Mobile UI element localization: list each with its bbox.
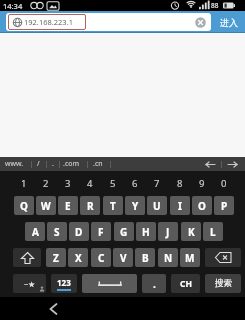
button[interactable]: 2 (36, 171, 56, 196)
button[interactable] (82, 274, 137, 293)
button[interactable]: CH (171, 274, 200, 293)
staticText: 8 (177, 177, 183, 190)
button[interactable]: . (142, 274, 166, 293)
button[interactable]: D (69, 222, 89, 241)
button[interactable]: 3 (58, 171, 78, 196)
staticText: K (188, 225, 195, 239)
staticText: D (75, 225, 83, 239)
staticText: 5 (110, 177, 116, 190)
button[interactable]: H (136, 222, 156, 241)
button[interactable]: M (180, 248, 200, 267)
button[interactable]: U (147, 196, 167, 215)
button[interactable]: ~★ (13, 274, 46, 293)
button[interactable]: L (203, 222, 223, 241)
button[interactable] (205, 248, 241, 267)
staticText: M (185, 251, 195, 265)
button[interactable]: O (192, 196, 212, 215)
button[interactable]: T (103, 196, 123, 215)
staticText: .com (63, 159, 80, 169)
button[interactable]: A (25, 222, 45, 241)
staticText: V (120, 251, 127, 265)
button[interactable]: www. (5, 157, 24, 171)
staticText: ~★ (24, 279, 36, 289)
staticText: J (166, 225, 170, 239)
button[interactable]: 123 (51, 274, 77, 293)
button[interactable] (48, 303, 59, 315)
button[interactable]: W (36, 196, 56, 215)
button[interactable]: Z (46, 248, 66, 267)
staticText: 2 (43, 177, 49, 190)
staticText: 9 (199, 177, 205, 190)
button[interactable]: N (158, 248, 178, 267)
staticText: H (142, 225, 150, 239)
staticText: 192.168.223.1 (24, 17, 73, 27)
staticText: C (98, 251, 105, 265)
button[interactable]: 进入 (213, 11, 245, 33)
button[interactable] (195, 17, 206, 28)
staticText: N (164, 251, 173, 265)
staticText: X (75, 251, 82, 265)
button[interactable]: F (91, 222, 111, 241)
button[interactable]: / (37, 157, 40, 171)
staticText: 3 (65, 177, 71, 190)
button[interactable]: J (158, 222, 178, 241)
button[interactable]: R (80, 196, 100, 215)
button[interactable]: E (58, 196, 78, 215)
staticText: A (32, 225, 39, 239)
staticText: 1 (21, 177, 27, 190)
button[interactable]: 4 (80, 171, 100, 196)
staticText: Y (132, 199, 139, 213)
button[interactable]: 1 (14, 171, 34, 196)
button[interactable]: 0 (214, 171, 234, 196)
staticText: 0 (221, 177, 227, 190)
staticText: 4 (87, 177, 93, 190)
staticText: .cn (93, 159, 103, 169)
button[interactable]: S (47, 222, 67, 241)
staticText: F (98, 225, 104, 239)
staticText: W (41, 199, 51, 213)
staticText: B (142, 251, 149, 265)
staticText: . (153, 277, 156, 291)
staticText: Q (20, 199, 28, 213)
button[interactable]: .cn (93, 157, 103, 171)
staticText: R (87, 199, 94, 213)
staticText: 6 (132, 177, 138, 190)
staticText: S (54, 225, 60, 239)
staticText: 7 (154, 177, 160, 190)
button[interactable]: 7 (147, 171, 167, 196)
button[interactable]: Q (14, 196, 34, 215)
button[interactable]: V (113, 248, 133, 267)
staticText: Z (53, 251, 59, 265)
staticText: E (65, 199, 71, 213)
staticText: . (52, 159, 54, 169)
button[interactable]: 5 (103, 171, 123, 196)
staticText: 123 (57, 277, 71, 288)
button[interactable]: Y (125, 196, 145, 215)
staticText: O (198, 199, 206, 213)
button[interactable]: I (170, 196, 190, 215)
staticText: 搜索 (215, 278, 232, 289)
button[interactable]: C (91, 248, 111, 267)
button[interactable]: 搜索 (205, 274, 241, 293)
button[interactable] (205, 161, 216, 168)
staticText: P (221, 199, 228, 213)
button[interactable]: .com (63, 157, 80, 171)
button[interactable]: X (68, 248, 88, 267)
staticText: T (110, 199, 116, 213)
staticText: 88 (211, 1, 219, 10)
button[interactable] (227, 161, 238, 168)
button[interactable]: P (214, 196, 234, 215)
button[interactable] (13, 248, 41, 267)
staticText: www. (5, 159, 24, 169)
staticText: 14:34 (3, 1, 23, 11)
button[interactable]: . (52, 157, 54, 171)
button[interactable]: G (114, 222, 134, 241)
button[interactable]: K (181, 222, 201, 241)
staticText: U (153, 199, 161, 213)
button[interactable]: 6 (125, 171, 145, 196)
button[interactable]: 9 (192, 171, 212, 196)
staticText: / (37, 159, 40, 169)
button[interactable]: B (135, 248, 155, 267)
staticText: L (210, 225, 216, 239)
button[interactable]: 8 (170, 171, 190, 196)
